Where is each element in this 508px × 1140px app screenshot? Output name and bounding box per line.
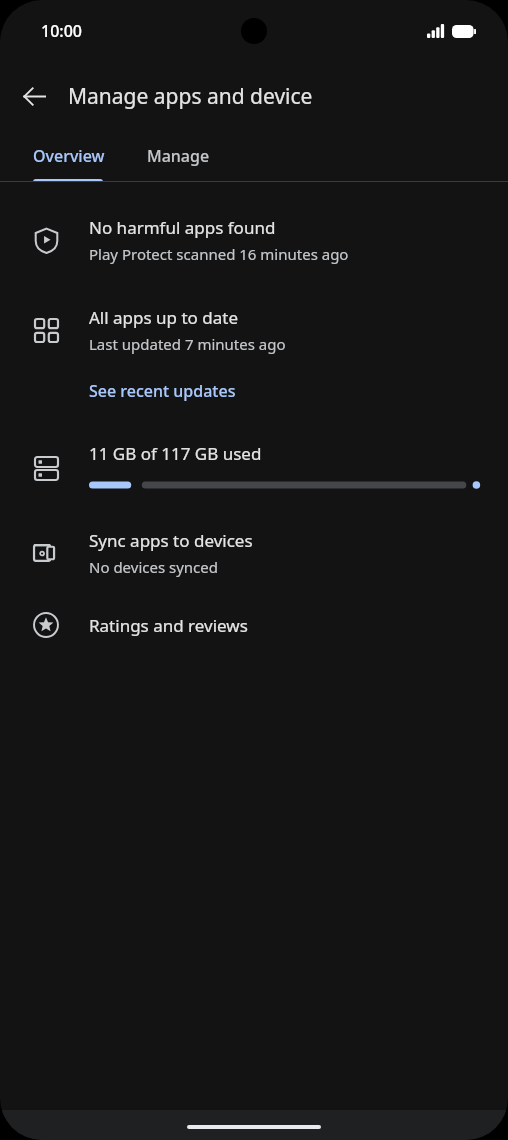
button[interactable]: No harmful apps found — [0, 210, 508, 270]
staticText: No harmful apps found — [89, 216, 276, 239]
staticText: Manage apps and device — [68, 82, 313, 111]
button[interactable]: 11 GB of 117 GB used — [0, 438, 508, 493]
button[interactable]: Back — [10, 72, 58, 120]
staticText: Ratings and reviews — [89, 614, 248, 637]
staticText: Sync apps to devices — [89, 529, 253, 552]
button[interactable]: All apps up to date — [0, 300, 508, 360]
button[interactable]: Overview — [33, 130, 105, 182]
button[interactable]: Ratings and reviews — [0, 601, 508, 649]
staticText: Manage — [147, 145, 210, 167]
button[interactable]: See recent updates — [89, 376, 236, 406]
staticText: Last updated 7 minutes ago — [89, 334, 286, 354]
staticText: No devices synced — [89, 557, 218, 577]
button[interactable]: Sync apps to devices — [0, 523, 508, 583]
staticText: See recent updates — [89, 380, 236, 402]
button[interactable]: Manage — [147, 130, 210, 182]
staticText: All apps up to date — [89, 306, 239, 329]
staticText: 10:00 — [41, 20, 82, 42]
staticText: 11 GB of 117 GB used — [89, 442, 262, 465]
staticText: Overview — [33, 145, 105, 167]
staticText: Play Protect scanned 16 minutes ago — [89, 244, 349, 264]
